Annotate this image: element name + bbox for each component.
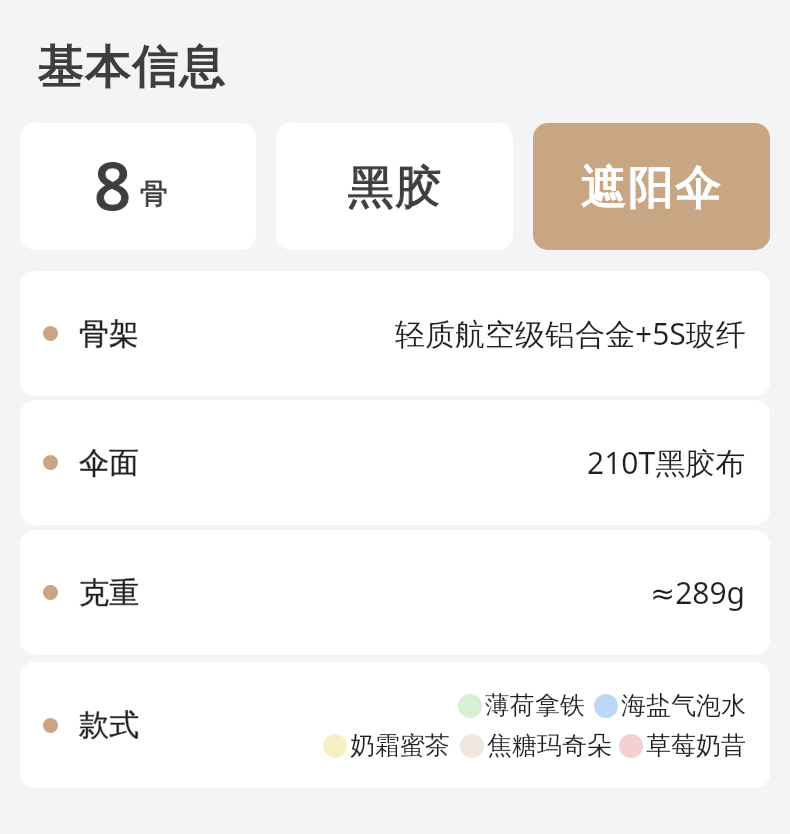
- staticText: 薄荷拿铁: [485, 690, 585, 721]
- staticText: 黑胶: [347, 159, 442, 217]
- staticText: 遮阳伞: [581, 159, 723, 217]
- button[interactable]: 草莓奶昔: [619, 730, 746, 761]
- staticText: ≈289g: [650, 572, 746, 613]
- button[interactable]: 骨架: [20, 271, 770, 396]
- staticText: 伞面: [79, 444, 139, 482]
- button[interactable]: 伞面: [20, 400, 770, 525]
- staticText: 基本信息: [38, 38, 227, 96]
- button[interactable]: 遮阳伞: [533, 123, 770, 250]
- button[interactable]: 8: [20, 123, 256, 250]
- staticText: 奶霜蜜茶: [350, 730, 450, 761]
- staticText: 草莓奶昔: [646, 730, 746, 761]
- staticText: 黑胶: [347, 159, 442, 217]
- button[interactable]: 薄荷拿铁: [458, 690, 585, 721]
- staticText: 遮阳伞: [581, 159, 723, 217]
- staticText: 款式: [79, 706, 139, 744]
- staticText: 骨架: [79, 315, 139, 353]
- button[interactable]: 海盐气泡水: [594, 690, 746, 721]
- staticText: 海盐气泡水: [621, 690, 746, 721]
- staticText: 款式: [79, 706, 139, 744]
- staticText: 克重: [79, 574, 139, 612]
- button[interactable]: 焦糖玛奇朵: [460, 730, 612, 761]
- staticText: 210T黑胶布: [587, 442, 746, 483]
- button[interactable]: 黑胶: [276, 123, 513, 250]
- button[interactable]: 克重: [20, 530, 770, 655]
- staticText: 基本信息: [38, 38, 227, 96]
- button[interactable]: 款式: [20, 662, 770, 788]
- staticText: 骨: [140, 176, 168, 211]
- staticText: 焦糖玛奇朵: [487, 730, 612, 761]
- staticText: 8: [94, 141, 132, 230]
- button[interactable]: 奶霜蜜茶: [323, 730, 450, 761]
- staticText: 克重: [79, 574, 139, 612]
- staticText: 轻质航空级铝合金+5S玻纤: [395, 313, 746, 354]
- staticText: 8: [94, 141, 132, 230]
- staticText: 伞面: [79, 444, 139, 482]
- staticText: 骨架: [79, 315, 139, 353]
- staticText: 骨: [140, 176, 168, 211]
